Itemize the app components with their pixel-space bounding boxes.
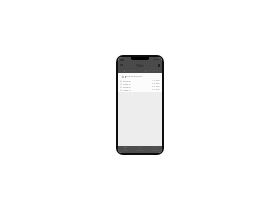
button[interactable]: Navigation menu — [119, 63, 123, 67]
staticText: Nest 2 — [123, 82, 131, 85]
staticText: Pixel 8 — [123, 79, 131, 82]
staticText: Search devices — [126, 75, 142, 78]
staticText: 2 h ago — [152, 82, 160, 85]
staticText: 3 h ago — [152, 85, 160, 88]
button[interactable]: Contacts — [118, 68, 140, 73]
button[interactable]: Nest 2 — [120, 82, 160, 85]
staticText: 1 h ago — [152, 79, 160, 82]
staticText: Nest 4 — [123, 88, 131, 91]
staticText: Pixel 6 — [123, 85, 131, 88]
button[interactable]: Pixel 8 — [120, 79, 160, 82]
button[interactable]: Pixel 6 — [120, 85, 160, 88]
staticText: Account — [151, 149, 159, 152]
button[interactable]: Account — [147, 146, 162, 153]
staticText: Home — [122, 149, 128, 152]
button[interactable]: Nest 4 — [120, 88, 160, 91]
staticText: Contacts — [126, 69, 135, 72]
staticText: Devices — [136, 149, 144, 152]
staticText: 4 h ago — [152, 88, 160, 91]
button[interactable]: Home — [118, 146, 132, 153]
button[interactable]: More options — [157, 63, 161, 67]
staticText: Title — [136, 63, 144, 68]
button[interactable]: Favourites — [140, 68, 162, 73]
button[interactable]: Search devices — [122, 74, 160, 79]
